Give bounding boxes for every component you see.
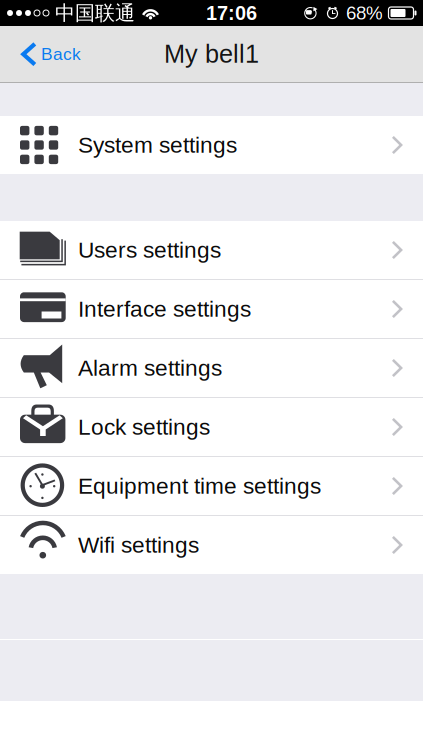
button[interactable]: Lock settings xyxy=(0,398,423,456)
button[interactable]: Users settings xyxy=(0,221,423,279)
staticText: Back xyxy=(41,44,81,64)
button[interactable]: System settings xyxy=(0,116,423,174)
staticText: Users settings xyxy=(78,237,221,263)
button[interactable]: Alarm settings xyxy=(0,339,423,397)
staticText: My bell1 xyxy=(164,40,259,68)
button[interactable]: Equipment time settings xyxy=(0,457,423,515)
staticText: Lock settings xyxy=(78,414,210,440)
staticText: Interface settings xyxy=(78,296,251,322)
staticText: Alarm settings xyxy=(78,355,222,381)
staticText: 68% xyxy=(346,3,383,23)
button[interactable]: Back xyxy=(0,26,93,82)
button[interactable]: Wifi settings xyxy=(0,516,423,574)
staticText: Equipment time settings xyxy=(78,473,321,499)
staticText: 17:06 xyxy=(206,2,257,24)
staticText: 中国联通 xyxy=(55,0,135,26)
button[interactable]: Interface settings xyxy=(0,280,423,338)
staticText: Wifi settings xyxy=(78,532,199,558)
staticText: System settings xyxy=(78,132,237,158)
